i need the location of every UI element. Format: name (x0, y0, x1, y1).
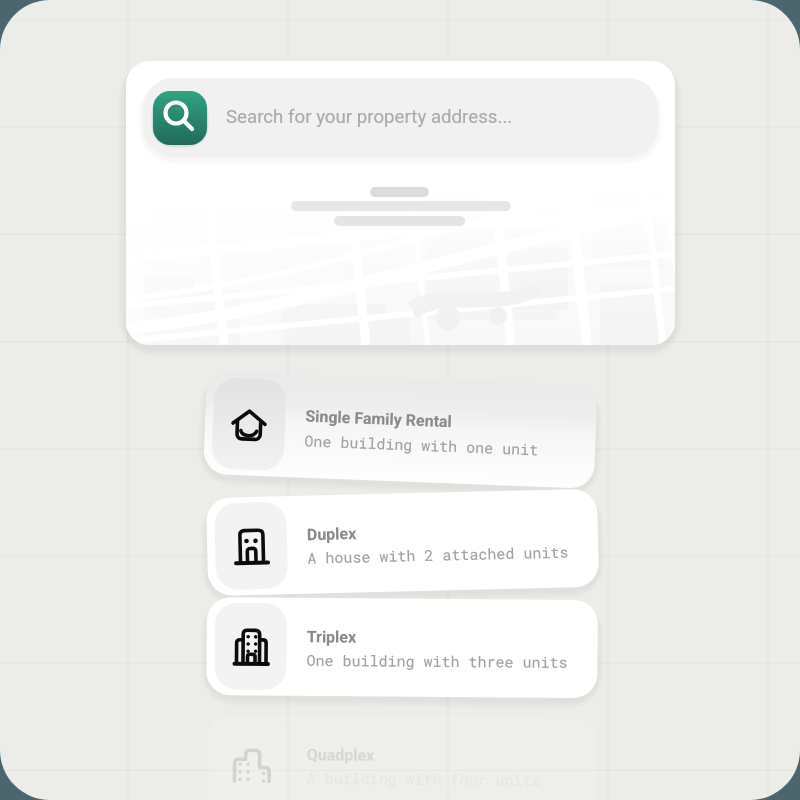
button[interactable] (0, 0, 800, 800)
